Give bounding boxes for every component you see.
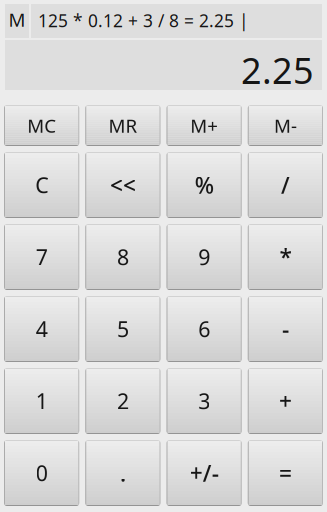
staticText: 125 * 0.12 + 3 / 8 = 2.25 | <box>38 9 249 32</box>
staticText: 5 <box>117 315 129 343</box>
button[interactable]: MC <box>4 105 79 146</box>
button[interactable]: 0 <box>4 440 79 506</box>
staticText: 1 <box>36 387 48 415</box>
button[interactable]: = <box>248 440 323 506</box>
staticText: 2.25 <box>241 46 314 94</box>
button[interactable]: << <box>85 152 160 218</box>
staticText: - <box>282 314 289 344</box>
staticText: << <box>110 170 136 200</box>
staticText: MR <box>108 113 137 138</box>
staticText: 6 <box>198 315 210 343</box>
button[interactable]: / <box>248 152 323 218</box>
button[interactable]: * <box>248 224 323 290</box>
staticText: % <box>195 170 214 200</box>
button[interactable]: 2 <box>85 368 160 434</box>
button[interactable]: 8 <box>85 224 160 290</box>
button[interactable]: M+ <box>166 105 242 146</box>
button[interactable]: - <box>248 296 323 362</box>
staticText: * <box>279 242 291 272</box>
button[interactable]: 1 <box>4 368 79 434</box>
staticText: M- <box>274 113 297 138</box>
staticText: 9 <box>198 243 210 271</box>
button[interactable]: 4 <box>4 296 79 362</box>
button[interactable]: % <box>166 152 242 218</box>
button[interactable]: MR <box>85 105 160 146</box>
button[interactable]: 7 <box>4 224 79 290</box>
staticText: 7 <box>36 243 48 271</box>
staticText: / <box>281 170 290 200</box>
staticText: = <box>279 458 292 488</box>
button[interactable]: 5 <box>85 296 160 362</box>
staticText: 2 <box>117 387 129 415</box>
staticText: +/- <box>190 458 219 488</box>
button[interactable]: 3 <box>166 368 242 434</box>
button[interactable]: +/- <box>166 440 242 506</box>
staticText: MC <box>27 113 56 138</box>
staticText: M <box>8 7 25 32</box>
staticText: M+ <box>190 113 218 138</box>
button[interactable]: 6 <box>166 296 242 362</box>
button[interactable]: . <box>85 440 160 506</box>
button[interactable]: 9 <box>166 224 242 290</box>
staticText: + <box>279 386 292 416</box>
staticText: . <box>120 458 126 488</box>
staticText: 0 <box>36 459 48 487</box>
staticText: 8 <box>117 243 129 271</box>
staticText: 4 <box>36 315 48 343</box>
staticText: C <box>35 171 48 199</box>
button[interactable]: + <box>248 368 323 434</box>
staticText: 3 <box>198 387 210 415</box>
button[interactable]: M- <box>248 105 323 146</box>
button[interactable]: C <box>4 152 79 218</box>
